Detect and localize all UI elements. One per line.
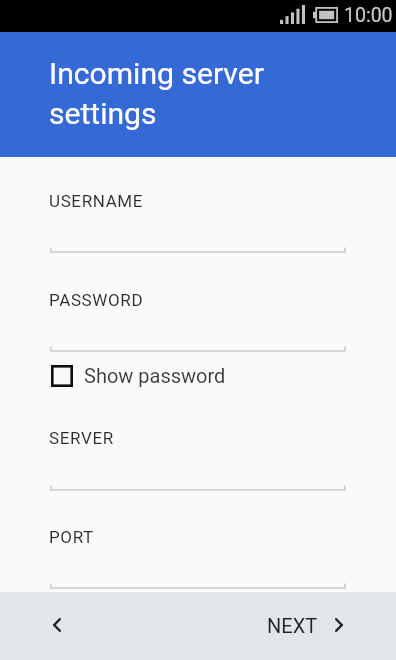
staticText: PASSWORD bbox=[49, 290, 144, 310]
staticText: Show password bbox=[84, 364, 226, 387]
button[interactable]: Show password bbox=[44, 358, 234, 394]
staticText: USERNAME bbox=[49, 191, 144, 211]
staticText: Incoming server settings bbox=[49, 56, 264, 131]
button[interactable] bbox=[50, 420, 346, 494]
staticText: SERVER bbox=[49, 428, 114, 448]
staticText: PORT bbox=[49, 527, 94, 547]
button[interactable]: Back bbox=[33, 601, 81, 649]
button[interactable] bbox=[50, 183, 346, 256]
button[interactable] bbox=[50, 519, 346, 592]
button[interactable]: NEXT bbox=[252, 592, 362, 660]
staticText: NEXT bbox=[267, 614, 318, 637]
staticText: 10:00 bbox=[344, 4, 393, 27]
button[interactable] bbox=[50, 282, 346, 355]
